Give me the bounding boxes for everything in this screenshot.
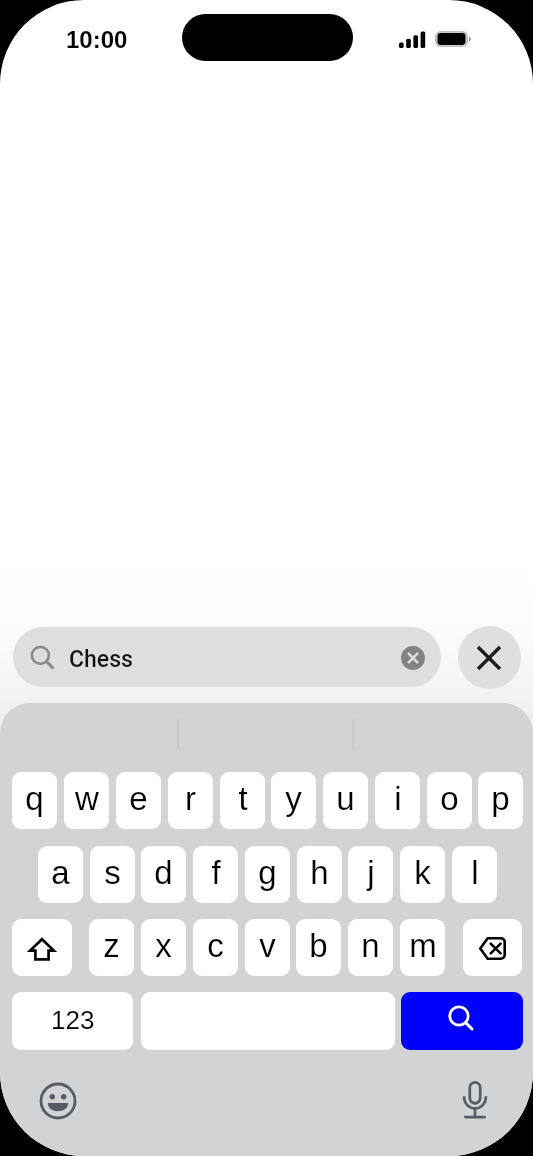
button[interactable]: Chess [13, 627, 441, 687]
button[interactable]: o [427, 772, 472, 829]
staticText: s [104, 854, 121, 891]
button[interactable]: p [478, 772, 523, 829]
staticText: y [285, 780, 302, 817]
button[interactable]: r [168, 772, 213, 829]
staticText: u [336, 780, 355, 817]
button[interactable]: d [141, 846, 186, 903]
button[interactable]: e [116, 772, 161, 829]
button[interactable]: k [400, 846, 445, 903]
button[interactable]: z [89, 919, 134, 976]
staticText: m [409, 927, 437, 964]
staticText: a [51, 854, 70, 891]
button[interactable]: Backspace [463, 919, 522, 976]
button[interactable]: n [348, 919, 393, 976]
button[interactable]: 123 [12, 992, 133, 1050]
staticText: n [361, 927, 380, 964]
staticText: 123 [51, 1005, 95, 1034]
staticText: t [238, 780, 248, 817]
button[interactable]: Clear search [391, 636, 435, 680]
button[interactable]: m [400, 919, 445, 976]
staticText: d [154, 854, 173, 891]
staticText: w [75, 780, 99, 817]
staticText: i [394, 780, 402, 817]
button[interactable]: y [271, 772, 316, 829]
staticText: k [414, 854, 431, 891]
staticText: 10:00 [66, 26, 128, 53]
staticText: z [103, 927, 120, 964]
staticText: f [211, 854, 221, 891]
button[interactable]: Emoji keyboard [36, 1079, 80, 1123]
staticText: g [258, 854, 277, 891]
staticText: Chess [69, 646, 133, 673]
button[interactable]: v [245, 919, 290, 976]
button[interactable]: Voice input [453, 1078, 497, 1122]
staticText: r [185, 780, 196, 817]
staticText: v [259, 927, 276, 964]
button[interactable]: c [193, 919, 238, 976]
button[interactable]: s [90, 846, 135, 903]
button[interactable]: i [375, 772, 420, 829]
staticText: o [440, 780, 459, 817]
button[interactable]: h [297, 846, 342, 903]
button[interactable]: t [220, 772, 265, 829]
button[interactable]: x [141, 919, 186, 976]
button[interactable]: u [323, 772, 368, 829]
button[interactable]: Space [141, 992, 395, 1050]
button[interactable]: g [245, 846, 290, 903]
staticText: c [207, 927, 224, 964]
staticText: h [310, 854, 329, 891]
button[interactable]: Close search [458, 626, 521, 689]
button[interactable]: w [64, 772, 109, 829]
staticText: l [471, 854, 479, 891]
button[interactable]: l [452, 846, 497, 903]
button[interactable]: q [12, 772, 57, 829]
button[interactable]: b [296, 919, 341, 976]
staticText: p [491, 780, 510, 817]
button[interactable]: Shift [12, 919, 72, 976]
button[interactable]: f [193, 846, 238, 903]
staticText: x [155, 927, 172, 964]
staticText: q [25, 780, 44, 817]
staticText: e [129, 780, 148, 817]
button[interactable]: a [38, 846, 83, 903]
staticText: j [367, 854, 375, 891]
button[interactable]: Search [401, 992, 523, 1050]
button[interactable]: j [348, 846, 393, 903]
staticText: b [309, 927, 328, 964]
